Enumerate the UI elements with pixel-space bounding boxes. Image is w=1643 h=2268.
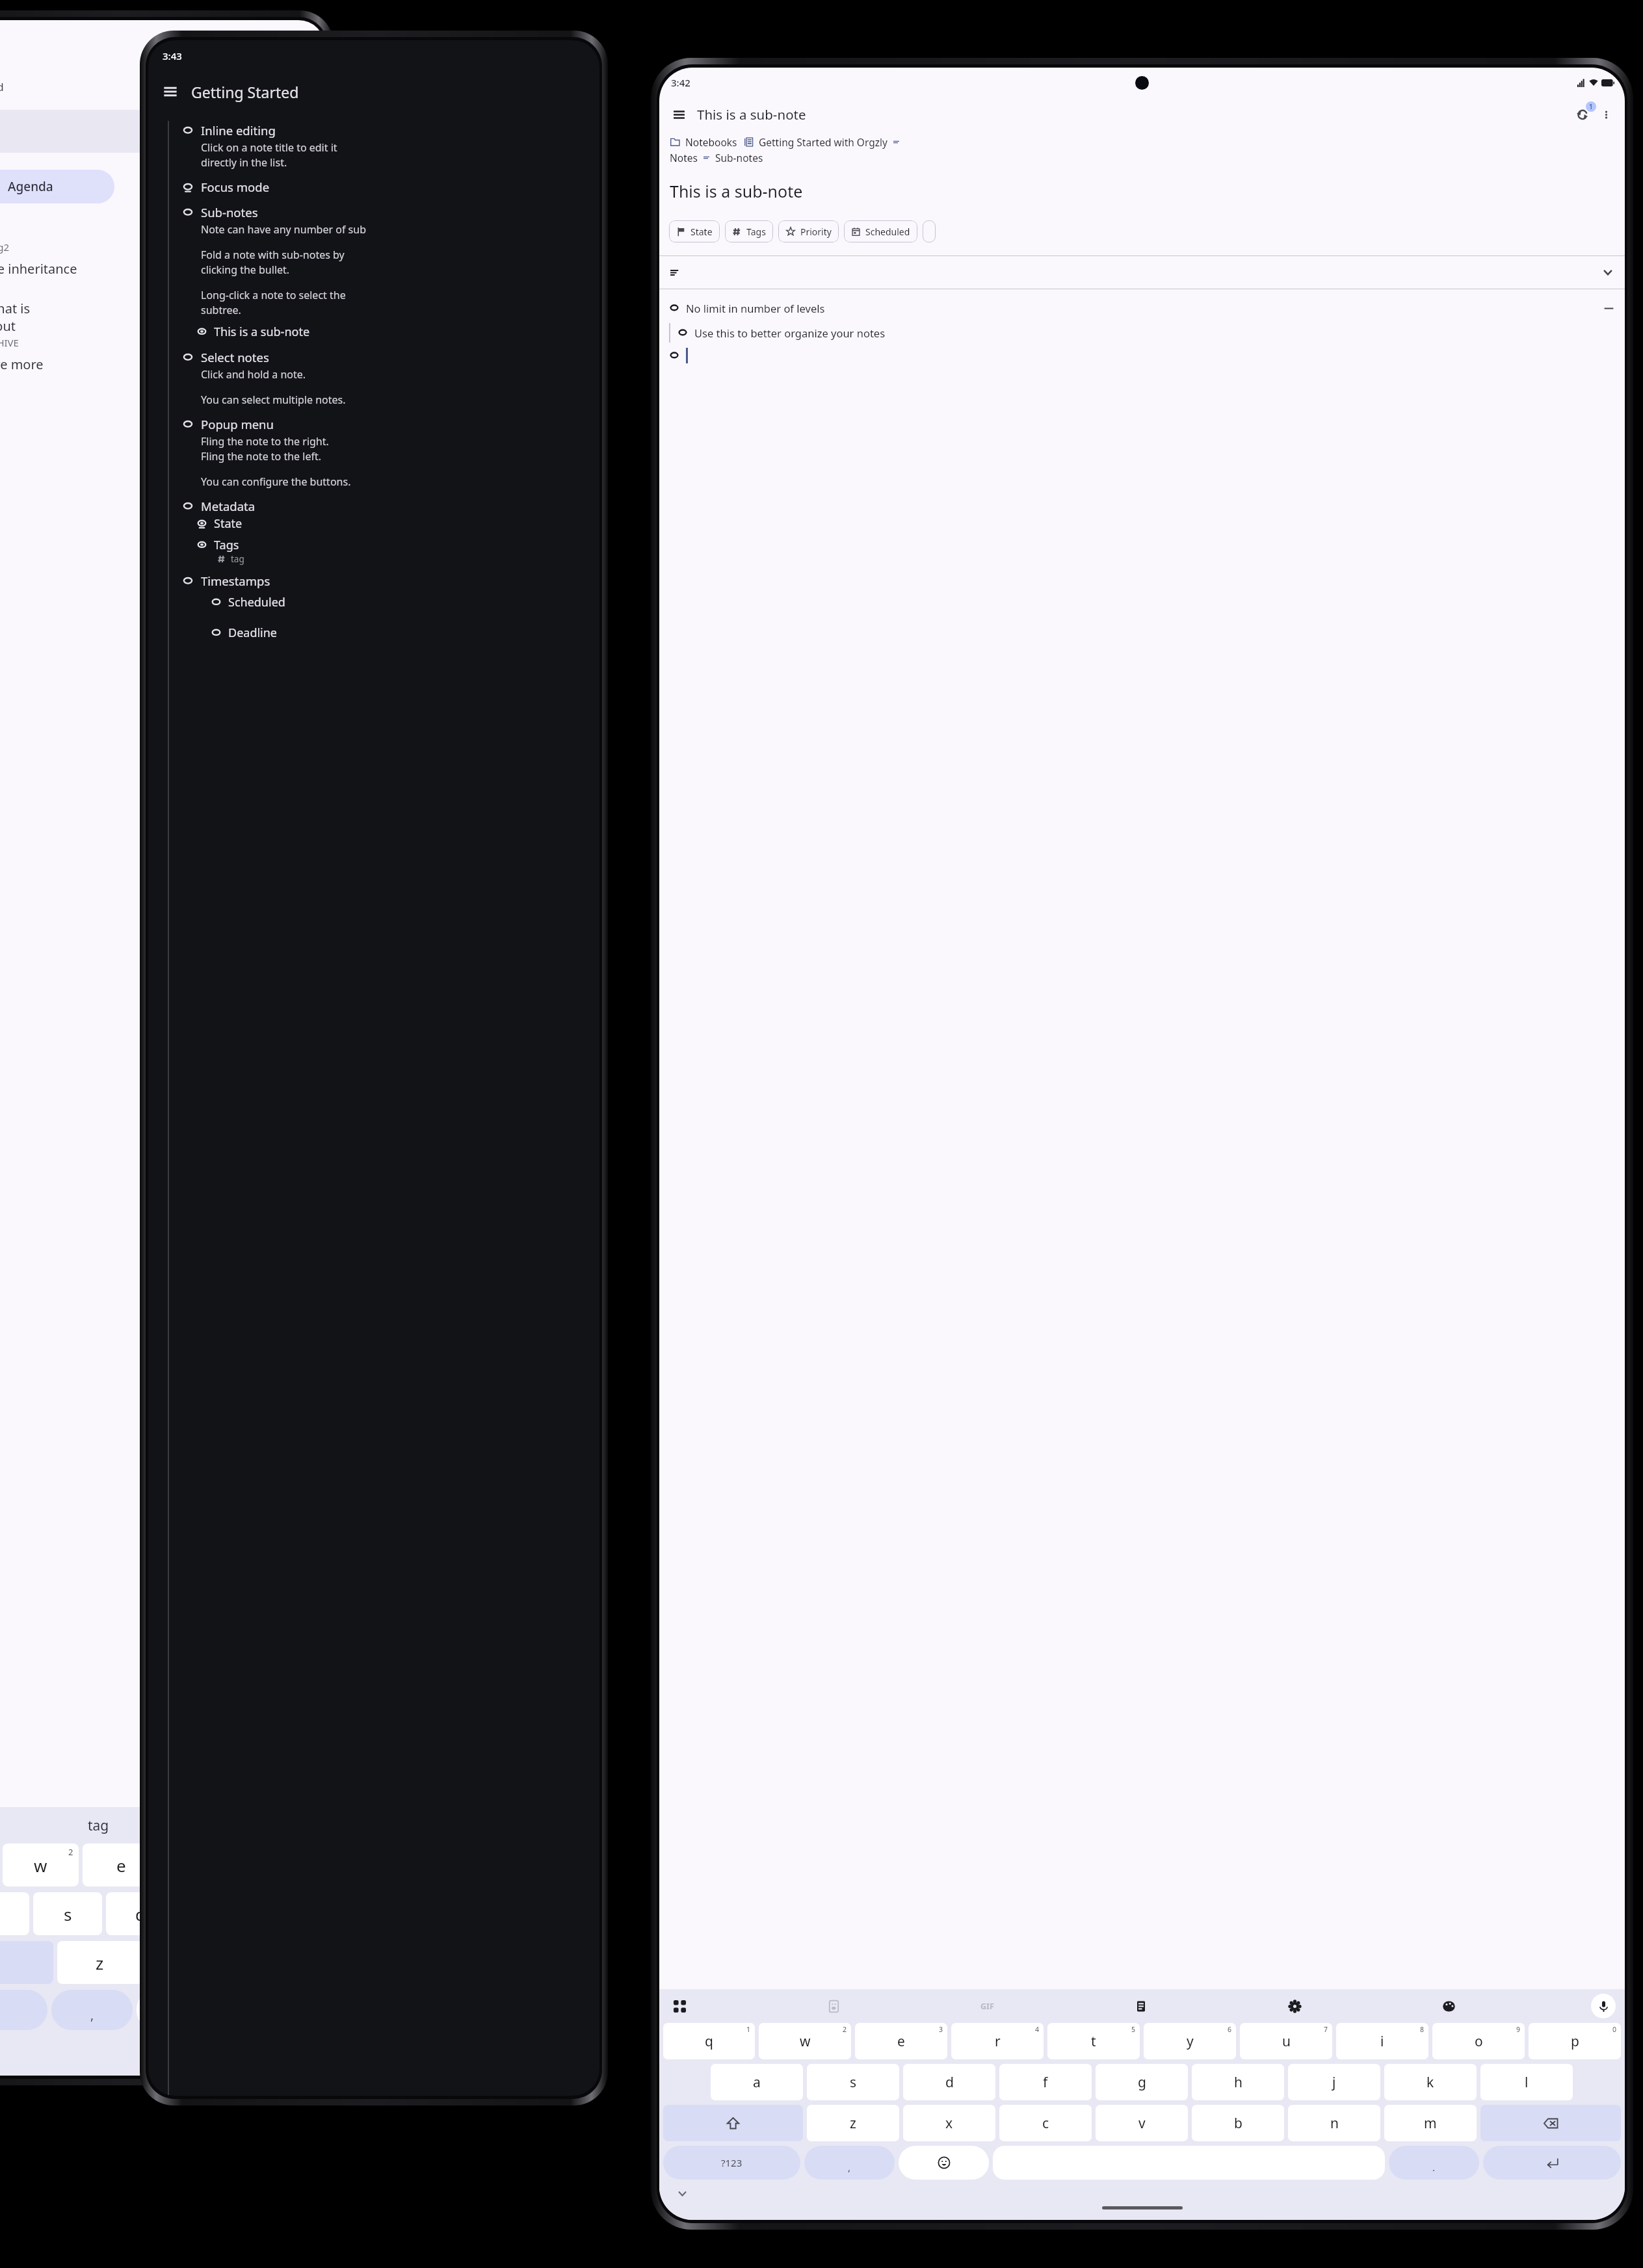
staticText: There are more <box>0 356 44 373</box>
button[interactable]: Focus mode <box>182 177 592 196</box>
button[interactable]: No limit in number of levels <box>659 298 1625 318</box>
button[interactable]: t <box>1047 2023 1140 2059</box>
staticText: 7 <box>1324 2025 1328 2034</box>
button[interactable]: w <box>3 1844 79 1886</box>
button[interactable]: Voice input <box>1591 1994 1616 2018</box>
staticText: subtree. <box>201 303 241 317</box>
staticText: w <box>800 2032 811 2051</box>
staticText: Click and hold a note. <box>201 367 306 382</box>
button[interactable]: Sub-note inheritance <box>0 257 325 296</box>
button[interactable]: Settings <box>1283 1995 1306 2017</box>
button[interactable]: k <box>1384 2064 1477 2100</box>
button[interactable]: Key <box>1483 2146 1621 2180</box>
button[interactable]: s <box>33 1892 102 1935</box>
staticText: Notes <box>670 151 698 164</box>
button[interactable]: r <box>951 2023 1044 2059</box>
button[interactable]: Scheduled <box>844 220 917 242</box>
button[interactable]: More options <box>1595 103 1617 125</box>
button[interactable]: w <box>759 2023 851 2059</box>
button[interactable]: z <box>807 2105 899 2141</box>
button[interactable]: o <box>1432 2023 1525 2059</box>
staticText: Metadata <box>201 498 256 514</box>
button[interactable]: Open navigation drawer <box>667 103 690 126</box>
staticText: e <box>897 2032 905 2051</box>
button[interactable]: v <box>1096 2105 1188 2141</box>
button[interactable]: Metadata <box>182 497 592 515</box>
button[interactable]: Sync, 1 pending <box>1570 102 1595 127</box>
button[interactable]: ?123 <box>0 1990 47 2030</box>
button[interactable]: Open navigation drawer <box>157 79 183 105</box>
button[interactable]: Themes <box>1438 1995 1460 2017</box>
button[interactable]: Priority <box>778 220 839 242</box>
staticText: Sub-notes <box>715 151 763 164</box>
button[interactable]: Tags <box>725 220 773 242</box>
button[interactable]: z <box>57 1941 142 1984</box>
button[interactable]: l <box>1480 2064 1573 2100</box>
button[interactable]: Timestamps <box>182 571 592 590</box>
button[interactable]: Inline editing <box>182 121 592 140</box>
button[interactable]: n <box>1288 2105 1380 2141</box>
button[interactable]: Stickers <box>822 1995 845 2017</box>
staticText: v <box>1138 2114 1146 2133</box>
button[interactable]: Hide keyboard <box>674 2185 690 2202</box>
button[interactable]: e <box>83 1844 159 1886</box>
button[interactable]: b <box>1192 2105 1284 2141</box>
button[interactable]: d <box>106 1892 175 1935</box>
button[interactable]: There are more <box>0 356 325 373</box>
button[interactable]: y <box>1144 2023 1236 2059</box>
button[interactable]: Comma <box>51 1990 133 2030</box>
button[interactable]: A note that is <box>0 296 325 349</box>
button[interactable]: Keyboard menu <box>668 1995 690 2017</box>
button[interactable]: Select notes <box>182 348 592 367</box>
button[interactable]: d <box>903 2064 995 2100</box>
button[interactable]: h <box>1192 2064 1284 2100</box>
button[interactable]: Key <box>663 2146 800 2180</box>
button[interactable]: r <box>163 1844 240 1886</box>
button[interactable]: Key <box>663 2105 803 2141</box>
staticText: w <box>34 1854 47 1877</box>
button[interactable]: Agenda <box>0 170 114 203</box>
staticText: tag1 tag2 <box>0 241 10 254</box>
button[interactable]: Key <box>1480 2105 1621 2141</box>
button[interactable]: q <box>663 2023 755 2059</box>
staticText: Sub-note inheritance <box>0 260 77 278</box>
button[interactable]: Tags <box>0 219 325 257</box>
button[interactable]: a <box>711 2064 803 2100</box>
staticText: ARCHIVE <box>0 336 19 349</box>
button[interactable]: s <box>807 2064 899 2100</box>
button[interactable]: e <box>855 2023 947 2059</box>
button[interactable]: Emoji <box>137 1990 218 2030</box>
button[interactable] <box>659 256 1625 289</box>
staticText: 4 found <box>0 79 4 94</box>
staticText: State <box>214 515 243 532</box>
button[interactable]: tag <box>0 110 319 153</box>
button[interactable]: f <box>999 2064 1092 2100</box>
button[interactable]: State <box>669 220 720 242</box>
button[interactable]: Key <box>899 2146 989 2180</box>
button[interactable]: i <box>1336 2023 1428 2059</box>
button[interactable]: Popup menu <box>182 415 592 434</box>
button[interactable]: x <box>146 1941 231 1984</box>
button[interactable]: GIF <box>976 1995 998 2017</box>
button[interactable]: x <box>903 2105 995 2141</box>
button[interactable]: g <box>1096 2064 1188 2100</box>
staticText: directly in the list. <box>201 155 287 170</box>
button[interactable]: p <box>1529 2023 1621 2059</box>
button[interactable]: u <box>1240 2023 1332 2059</box>
button[interactable]: Key <box>804 2146 895 2180</box>
button[interactable]: Clipboard <box>1130 1995 1152 2017</box>
button[interactable]: Use this to better organize your notes <box>659 323 1625 343</box>
button[interactable]: j <box>1288 2064 1380 2100</box>
button[interactable]: Key <box>1389 2146 1479 2180</box>
staticText: clicking the bullet. <box>201 263 290 277</box>
button[interactable]: c <box>999 2105 1092 2141</box>
button[interactable]: a <box>0 1892 29 1935</box>
button[interactable]: Sub-notes <box>182 203 592 222</box>
button[interactable]: m <box>1384 2105 1477 2141</box>
